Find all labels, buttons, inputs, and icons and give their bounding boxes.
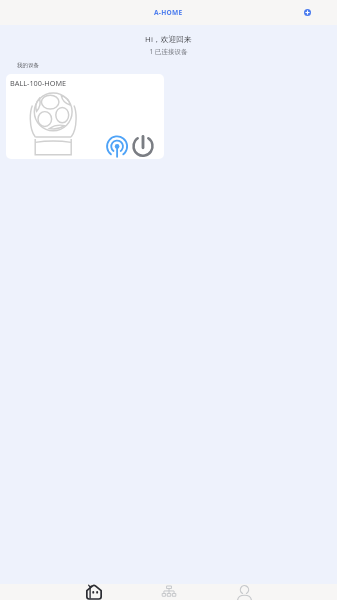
- button[interactable]: Home: [78, 584, 110, 600]
- button[interactable]: Devices: [153, 584, 185, 600]
- button[interactable]: Power: [130, 133, 156, 159]
- staticText: A-HOME: [154, 8, 183, 17]
- staticText: 我的设备: [17, 62, 39, 69]
- button[interactable]: Signal: [104, 133, 130, 159]
- staticText: 1 已连接设备: [0, 47, 337, 56]
- staticText: Hi，欢迎回来: [0, 34, 337, 45]
- button[interactable]: Profile: [228, 584, 260, 600]
- button[interactable]: BALL-100-HOME: [6, 74, 164, 159]
- staticText: BALL-100-HOME: [10, 78, 67, 88]
- button[interactable]: Add device: [298, 4, 316, 22]
